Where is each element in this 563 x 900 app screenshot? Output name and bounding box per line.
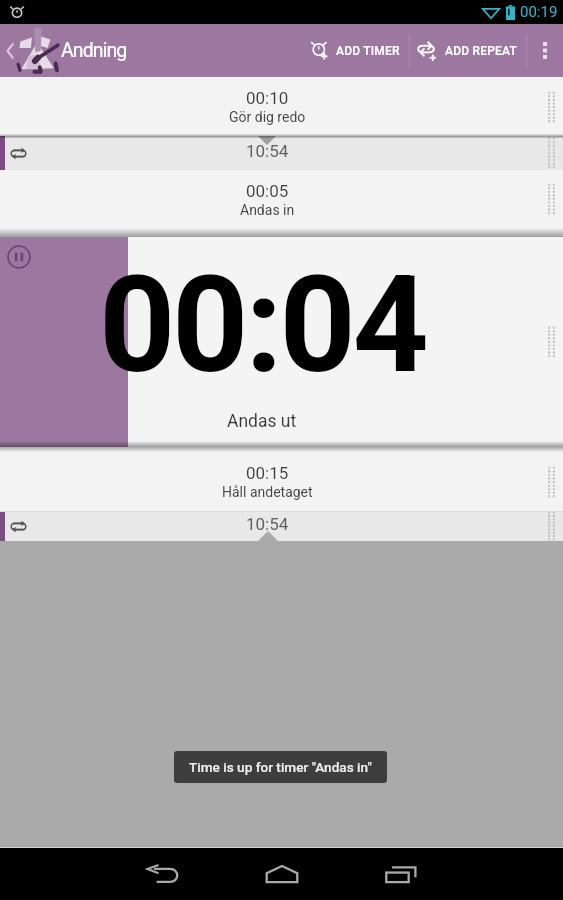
button[interactable]: More options <box>527 24 563 77</box>
staticText: 00:05 <box>246 181 289 201</box>
staticText: 00:04 <box>99 248 426 404</box>
staticText: Time is up for timer "Andas in" <box>189 759 372 775</box>
staticText: 00:15 <box>246 463 289 483</box>
button[interactable]: 00:10 <box>0 77 563 136</box>
staticText: Andas in <box>240 202 295 218</box>
button[interactable]: 10:54 <box>0 511 563 541</box>
button[interactable]: 00:04 <box>0 228 563 452</box>
staticText: 10:54 <box>246 514 289 534</box>
button[interactable]: ADD REPEAT <box>410 24 526 77</box>
button[interactable]: Recent apps <box>341 847 460 900</box>
staticText: ADD REPEAT <box>445 44 517 58</box>
staticText: 00:19 <box>520 3 558 21</box>
button[interactable]: 10:54 <box>0 136 563 170</box>
button[interactable]: 00:05 <box>0 170 563 228</box>
staticText: 00:10 <box>246 88 289 108</box>
staticText: Gör dig redo <box>229 109 306 125</box>
staticText: Andas ut <box>227 411 297 432</box>
button[interactable]: ADD TIMER <box>301 24 409 77</box>
staticText: Andning <box>61 39 127 62</box>
button[interactable]: Back <box>103 847 222 900</box>
staticText: Håll andetaget <box>222 484 313 500</box>
staticText: ADD TIMER <box>336 44 400 58</box>
staticText: 10:54 <box>246 141 289 161</box>
button[interactable]: Andning <box>0 24 127 77</box>
button[interactable]: Home <box>222 847 341 900</box>
button[interactable]: 00:15 <box>0 452 563 511</box>
